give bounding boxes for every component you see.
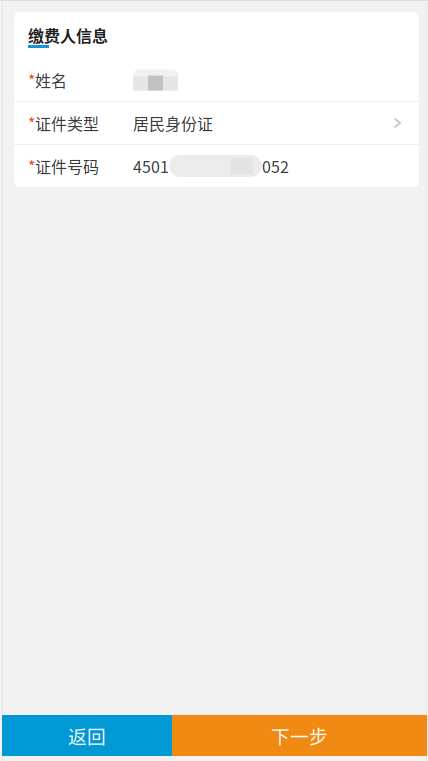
staticText: 姓名	[35, 68, 67, 92]
staticText: 052	[262, 154, 289, 178]
staticText: 下一步	[271, 722, 328, 749]
button[interactable]: 返回	[2, 715, 172, 756]
staticText: 居民身份证	[133, 111, 213, 135]
button[interactable]: 下一步	[172, 715, 427, 756]
staticText: 4501	[133, 154, 169, 178]
staticText: 缴费人信息	[28, 23, 108, 47]
button[interactable]: *	[14, 102, 419, 144]
staticText: 证件号码	[35, 154, 99, 178]
staticText: *	[28, 111, 35, 135]
staticText: *	[28, 154, 35, 178]
staticText: 证件类型	[35, 111, 99, 135]
staticText: 返回	[68, 722, 106, 749]
staticText: *	[28, 68, 35, 92]
